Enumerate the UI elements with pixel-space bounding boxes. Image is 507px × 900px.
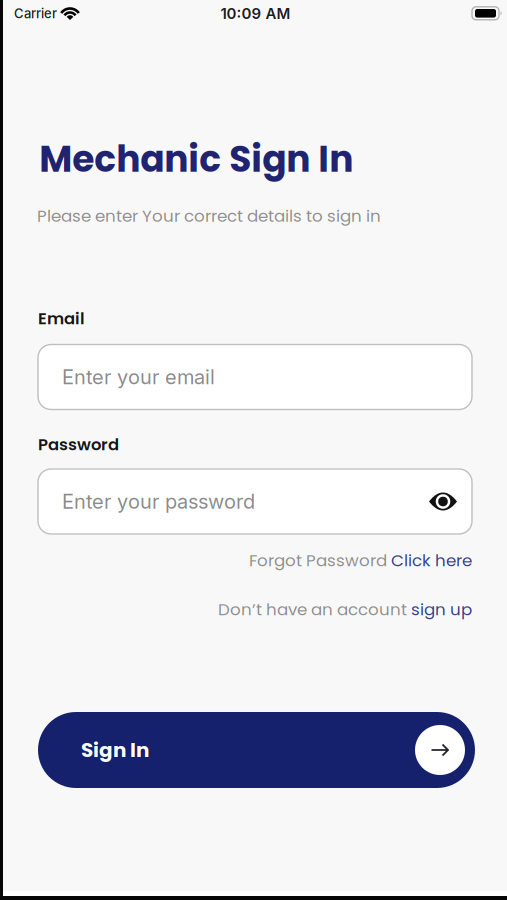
staticText: Don’t have an account — [218, 598, 411, 621]
staticText: Sign In — [81, 736, 149, 764]
staticText: Password — [38, 433, 119, 456]
button[interactable]: sign up — [411, 598, 472, 621]
staticText: Enter your password — [62, 489, 255, 514]
staticText: Forgot Password — [249, 549, 391, 572]
staticText: 10:09 AM — [220, 4, 290, 22]
staticText: Enter your email — [62, 365, 215, 389]
staticText: Please enter Your correct details to sig… — [37, 204, 381, 228]
staticText: Click here — [391, 549, 472, 572]
staticText: Email — [38, 307, 85, 330]
staticText: Mechanic Sign In — [39, 134, 353, 184]
staticText: sign up — [411, 598, 472, 621]
button[interactable]: Sign In — [38, 712, 475, 788]
button[interactable]: Enter your password — [38, 469, 472, 534]
button[interactable]: Show password — [429, 492, 457, 511]
button[interactable]: Click here — [391, 549, 472, 572]
button[interactable]: Enter your email — [38, 344, 472, 409]
staticText: Carrier — [14, 6, 57, 21]
